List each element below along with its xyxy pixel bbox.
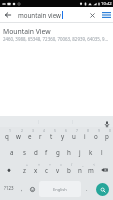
staticText: 5 [54, 128, 56, 133]
staticText: / [71, 162, 73, 167]
staticText: k [89, 148, 93, 156]
staticText: _ [82, 162, 84, 167]
button[interactable]: = [52, 161, 63, 178]
staticText: mountain view [18, 11, 61, 19]
button[interactable]: 4 [35, 127, 46, 144]
button[interactable]: < [85, 161, 96, 178]
button[interactable]: h [63, 144, 74, 161]
staticText: 3 [32, 128, 34, 133]
staticText: b [67, 166, 71, 174]
staticText: 4 [43, 128, 45, 133]
button[interactable]: × [30, 161, 41, 178]
staticText: m [88, 166, 94, 174]
staticText: c [45, 166, 48, 174]
button[interactable]: 7 [68, 127, 79, 144]
button[interactable]: 6 [57, 127, 68, 144]
staticText: a [10, 148, 14, 156]
button[interactable]: ?123 [0, 178, 17, 200]
button[interactable]: d [30, 144, 41, 161]
staticText: g [56, 148, 60, 156]
staticText: h [67, 148, 71, 156]
button[interactable]: Search [96, 183, 109, 196]
button[interactable]: j [74, 144, 85, 161]
staticText: q [5, 132, 9, 140]
staticText: < [93, 162, 95, 167]
staticText: f [45, 148, 48, 156]
button[interactable]: + [18, 161, 30, 178]
button[interactable]: f [41, 144, 52, 161]
button[interactable]: 0 [101, 127, 112, 144]
staticText: d [34, 148, 38, 156]
staticText: 2460, 3988, 65348, 72360, 70063, 82939, … [3, 36, 109, 42]
staticText: 1 [9, 128, 11, 133]
staticText: 7 [76, 128, 78, 133]
button[interactable]: Clear query [85, 7, 99, 23]
button[interactable]: Voice input [100, 116, 113, 127]
staticText: n [78, 166, 82, 174]
button[interactable]: ÷ [41, 161, 52, 178]
staticText: z [23, 166, 26, 174]
staticText: English [53, 187, 67, 192]
staticText: l [101, 148, 103, 156]
staticText: 0 [109, 128, 111, 133]
button[interactable]: a [6, 144, 18, 161]
staticText: 8 [87, 128, 89, 133]
button[interactable]: _ [74, 161, 85, 178]
button[interactable]: , [17, 178, 27, 200]
staticText: Mountain View [3, 27, 51, 36]
button[interactable]: 1 [1, 127, 13, 144]
button[interactable]: . [82, 178, 92, 200]
button[interactable]: l [96, 144, 107, 161]
button[interactable]: Emoji [27, 178, 38, 200]
button[interactable]: 5 [46, 127, 57, 144]
staticText: × [38, 162, 40, 167]
staticText: ?123 [4, 185, 14, 191]
button[interactable]: Search options [99, 7, 113, 23]
button[interactable]: k [85, 144, 96, 161]
staticText: t [50, 132, 53, 140]
button[interactable]: 8 [79, 127, 90, 144]
button[interactable]: s [18, 144, 30, 161]
staticText: p [105, 132, 109, 140]
staticText: w [16, 132, 21, 140]
staticText: i [84, 132, 86, 140]
staticText: 2 [21, 128, 23, 133]
staticText: . [86, 185, 88, 192]
staticText: s [23, 148, 26, 156]
button[interactable]: 3 [24, 127, 35, 144]
staticText: 6 [65, 128, 67, 133]
staticText: v [56, 166, 60, 174]
button[interactable]: Navigate up [0, 7, 16, 23]
staticText: x [34, 166, 38, 174]
button[interactable]: Backspace [96, 161, 113, 178]
button[interactable]: Shift [0, 161, 18, 178]
staticText: y [61, 132, 65, 140]
staticText: + [26, 162, 28, 167]
staticText: r [39, 132, 42, 140]
button[interactable]: 2 [13, 127, 24, 144]
staticText: 9 [98, 128, 100, 133]
button[interactable]: / [63, 161, 74, 178]
staticText: j [79, 148, 81, 156]
staticText: u [72, 132, 76, 140]
staticText: 10:42 [101, 1, 112, 7]
staticText: o [94, 132, 98, 140]
staticText: ÷ [49, 162, 51, 167]
button[interactable]: 9 [90, 127, 101, 144]
button[interactable]: English [39, 181, 81, 197]
staticText: = [60, 162, 62, 167]
staticText: e [28, 132, 32, 140]
staticText: , [21, 185, 23, 192]
button[interactable]: g [52, 144, 63, 161]
